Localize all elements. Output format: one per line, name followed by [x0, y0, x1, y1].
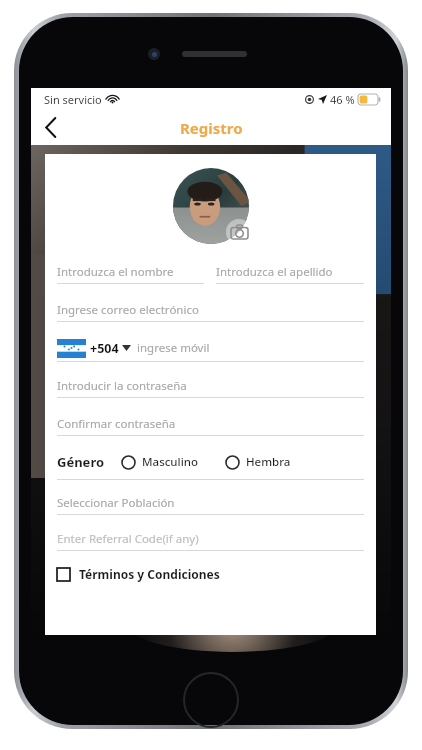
staticText: Hembra: [246, 454, 291, 470]
button[interactable]: Términos y Condiciones: [57, 561, 364, 587]
button[interactable]: Seleccionar Población: [57, 492, 364, 515]
staticText: 46 %: [330, 92, 355, 107]
staticText: Género: [57, 453, 105, 471]
button[interactable]: +504: [57, 335, 364, 362]
staticText: Seleccionar Población: [57, 495, 175, 511]
staticText: Enter Referral Code(if any): [57, 531, 199, 547]
staticText: Masculino: [142, 454, 199, 470]
button[interactable]: Profile photo: [173, 168, 249, 244]
staticText: ingrese móvil: [137, 340, 210, 356]
button[interactable]: Enter Referral Code(if any): [57, 528, 364, 551]
button[interactable]: Masculino: [121, 454, 199, 470]
button[interactable]: Ingrese correo electrónico: [57, 299, 364, 322]
button[interactable]: Introduzca el apellido: [216, 261, 364, 284]
staticText: Registro: [180, 118, 243, 138]
staticText: Sin servicio: [44, 92, 102, 107]
button[interactable]: Introduzca el nombre: [57, 261, 204, 284]
button[interactable]: Introducir la contraseña: [57, 375, 364, 398]
button[interactable]: Change photo: [226, 219, 252, 245]
button[interactable]: Hembra: [225, 454, 291, 470]
staticText: +504: [90, 340, 119, 357]
button[interactable]: Confirmar contraseña: [57, 413, 364, 436]
staticText: Introduzca el apellido: [216, 264, 333, 280]
staticText: Términos y Condiciones: [79, 566, 220, 582]
staticText: Confirmar contraseña: [57, 416, 176, 432]
staticText: Introducir la contraseña: [57, 378, 187, 394]
button[interactable]: Back: [31, 110, 71, 145]
staticText: Introduzca el nombre: [57, 264, 174, 280]
staticText: Ingrese correo electrónico: [57, 302, 199, 318]
